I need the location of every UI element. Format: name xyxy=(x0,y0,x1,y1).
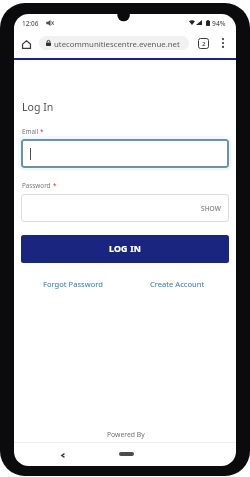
staticText: * xyxy=(53,181,57,190)
button[interactable]: Email input xyxy=(21,139,229,168)
staticText: Email xyxy=(22,127,40,136)
button[interactable]: LOG IN xyxy=(21,235,229,263)
staticText: 94% xyxy=(212,19,226,28)
staticText: * xyxy=(40,127,44,136)
staticText: 2 xyxy=(202,40,206,48)
staticText: LOG IN xyxy=(109,243,142,255)
button[interactable]: Back xyxy=(56,448,70,462)
button[interactable]: Address bar xyxy=(39,36,189,50)
button[interactable]: Tabs xyxy=(196,36,211,51)
staticText: Log In xyxy=(22,100,54,114)
button[interactable]: Home xyxy=(18,36,34,52)
button[interactable]: Home gesture xyxy=(119,452,134,456)
button[interactable]: Password input xyxy=(21,194,229,222)
button[interactable]: Create Account xyxy=(125,279,229,289)
staticText: Password xyxy=(22,181,53,190)
staticText: Forgot Password xyxy=(43,279,103,289)
staticText: Powered By xyxy=(107,430,145,439)
staticText: Create Account xyxy=(150,279,205,289)
button[interactable]: More options xyxy=(216,36,230,50)
staticText: utecommunitiescentre.evenue.net xyxy=(54,39,180,50)
staticText: SHOW xyxy=(201,204,221,213)
button[interactable]: Forgot Password xyxy=(21,279,125,289)
staticText: 12:06 xyxy=(22,19,39,28)
